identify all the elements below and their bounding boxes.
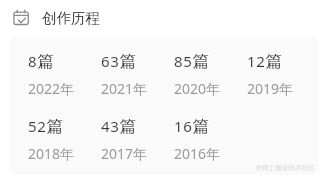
staticText: 43篇 — [101, 116, 137, 137]
button[interactable]: 16篇 — [174, 116, 247, 163]
staticText: 2019年 — [247, 79, 294, 98]
button[interactable]: 创作历程 — [0, 0, 323, 36]
button[interactable]: 63篇 — [101, 51, 174, 98]
button[interactable]: 8篇 — [28, 51, 101, 98]
button[interactable]: 12篇 — [247, 51, 318, 98]
staticText: 85篇 — [174, 51, 210, 72]
staticText: @稀土掘金技术社区 — [256, 163, 315, 172]
button[interactable]: 43篇 — [101, 116, 174, 163]
staticText: 12篇 — [247, 51, 283, 72]
button[interactable]: 52篇 — [28, 116, 101, 163]
button[interactable]: 85篇 — [174, 51, 247, 98]
staticText: 2022年 — [28, 79, 75, 98]
staticText: 2016年 — [174, 144, 221, 163]
other: 创作历程 — [13, 9, 29, 25]
staticText: 16篇 — [174, 116, 210, 137]
staticText: 52篇 — [28, 116, 64, 137]
staticText: 创作历程 — [42, 9, 100, 27]
staticText: 2017年 — [101, 144, 148, 163]
staticText: 2021年 — [101, 79, 148, 98]
staticText: 2018年 — [28, 144, 75, 163]
staticText: 63篇 — [101, 51, 137, 72]
staticText: 2020年 — [174, 79, 221, 98]
staticText: 8篇 — [28, 51, 54, 72]
